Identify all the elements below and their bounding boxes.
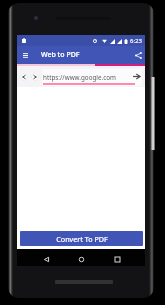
staticText: Convert To PDF <box>56 234 108 244</box>
staticText: https://www.google.com <box>43 73 116 82</box>
button[interactable]: Back <box>38 251 54 267</box>
button[interactable]: Go <box>130 70 142 82</box>
button[interactable]: Home <box>73 251 89 267</box>
button[interactable]: Forward <box>31 73 39 81</box>
staticText: Web to PDF <box>41 50 80 60</box>
button[interactable]: https://www.google.com <box>42 69 142 86</box>
staticText: 6:23 <box>130 37 142 45</box>
button[interactable]: Recent apps <box>109 251 125 267</box>
button[interactable]: Convert To PDF <box>20 231 143 246</box>
button[interactable]: Open navigation drawer <box>17 46 33 64</box>
button[interactable]: Share <box>131 46 145 64</box>
button[interactable]: Back <box>20 73 28 81</box>
